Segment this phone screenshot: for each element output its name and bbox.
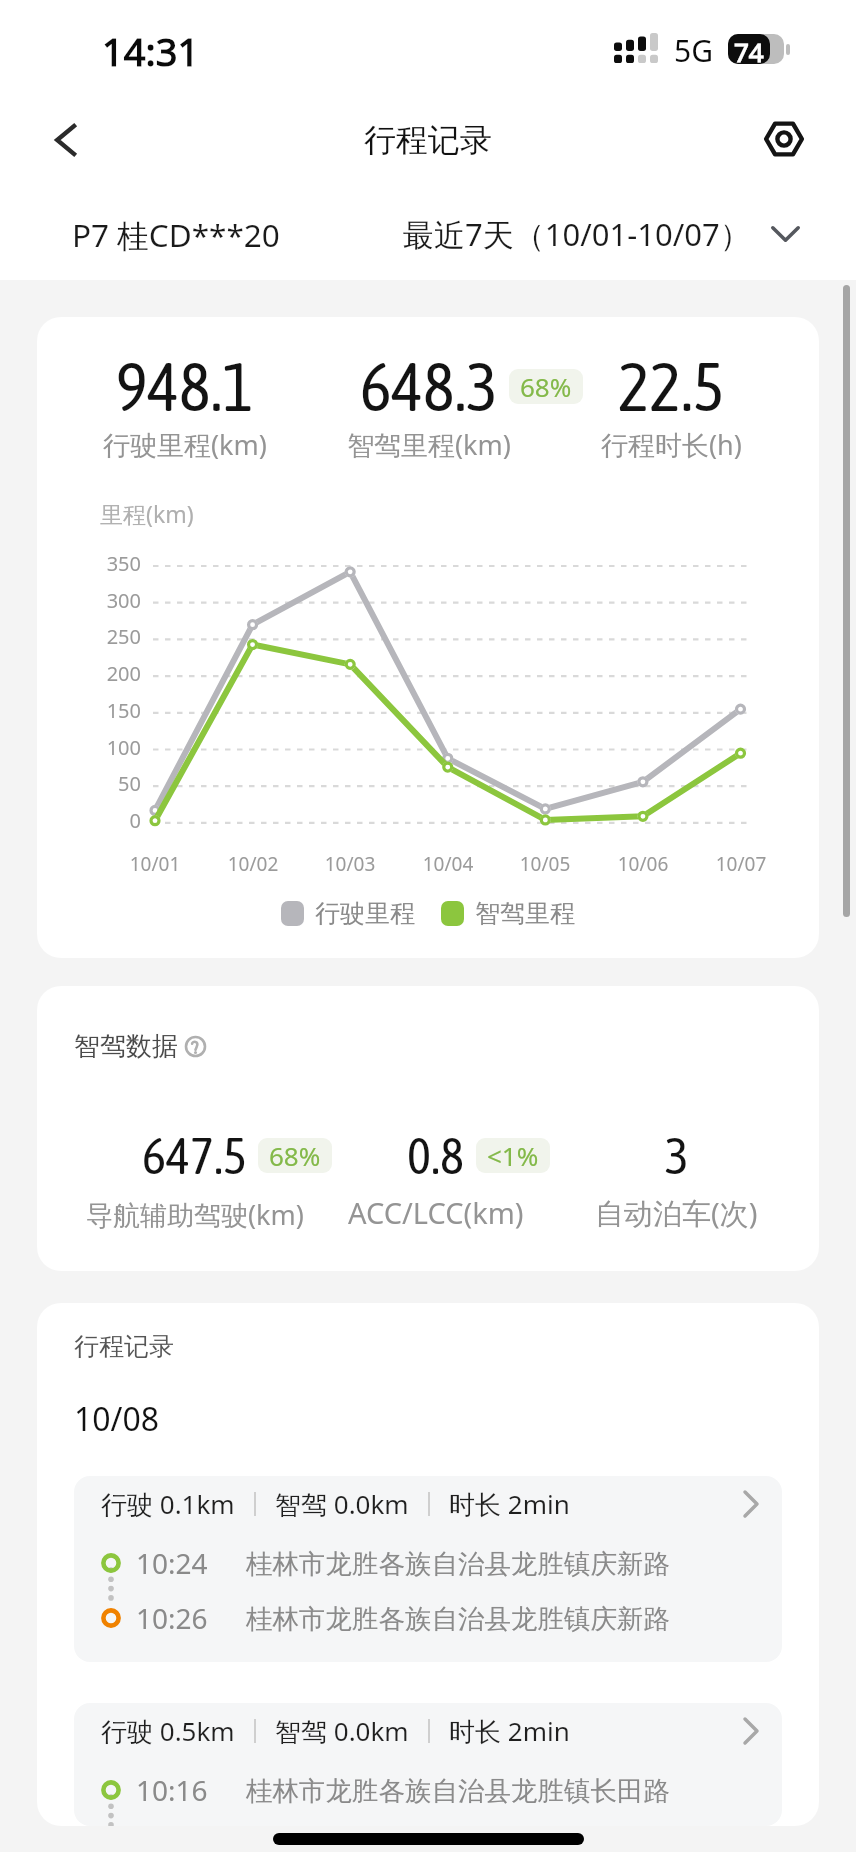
staticText: 3 xyxy=(665,1126,689,1184)
staticText: 948.1 xyxy=(116,348,254,425)
staticText: 0 xyxy=(71,807,141,834)
staticText: 桂林市龙胜各族自治县龙胜镇长田路 xyxy=(246,1774,670,1807)
staticText: 自动泊车(次) xyxy=(595,1193,758,1233)
staticText: 648.3 xyxy=(360,348,498,425)
staticText: 200 xyxy=(71,660,141,687)
staticText: P7 桂CD***20 xyxy=(72,213,280,256)
staticText: 行程记录 xyxy=(74,1331,174,1362)
staticText: 250 xyxy=(71,623,141,650)
staticText: 10/05 xyxy=(497,851,593,877)
button[interactable]: Back xyxy=(35,110,95,170)
staticText: 5G xyxy=(674,30,713,71)
staticText: 里程(km) xyxy=(100,498,194,529)
staticText: 最近7天（10/01-10/07） xyxy=(403,213,751,255)
staticText: 300 xyxy=(71,587,141,614)
staticText: 行驶里程 xyxy=(315,898,415,929)
staticText: 647.5 xyxy=(142,1126,247,1184)
staticText: 智驾 0.0km xyxy=(275,1713,409,1749)
staticText: 行驶 0.5km xyxy=(101,1713,235,1749)
staticText: 行驶里程(km) xyxy=(103,426,267,463)
staticText: 10/07 xyxy=(693,851,789,877)
staticText: 行驶 0.1km xyxy=(101,1486,235,1522)
staticText: 0.8 xyxy=(407,1126,465,1184)
staticText: 10/02 xyxy=(205,851,301,877)
staticText: 50 xyxy=(71,770,141,797)
staticText: 智驾里程(km) xyxy=(347,426,511,463)
staticText: 智驾数据 xyxy=(74,1030,178,1063)
staticText: 68% xyxy=(269,1138,321,1173)
staticText: ACC/LCC(km) xyxy=(348,1193,524,1232)
staticText: 智驾 0.0km xyxy=(275,1486,409,1522)
staticText: 10/06 xyxy=(595,851,691,877)
staticText: 74 xyxy=(734,34,764,64)
button[interactable]: 智驾数据 xyxy=(74,1030,207,1063)
button[interactable]: Settings xyxy=(754,109,814,169)
button[interactable]: 行驶 0.5km xyxy=(74,1703,782,1826)
staticText: 150 xyxy=(71,697,141,724)
staticText: 10/08 xyxy=(74,1397,160,1441)
staticText: 10/04 xyxy=(400,851,496,877)
staticText: 桂林市龙胜各族自治县龙胜镇庆新路 xyxy=(246,1602,670,1635)
staticText: 智驾里程 xyxy=(475,898,575,929)
staticText: 导航辅助驾驶(km) xyxy=(86,1196,304,1233)
staticText: <1% xyxy=(487,1138,539,1173)
staticText: 68% xyxy=(520,369,572,404)
staticText: 时长 2min xyxy=(449,1713,570,1749)
staticText: 10:26 xyxy=(136,1599,208,1637)
staticText: 10/01 xyxy=(107,851,203,877)
staticText: 10:16 xyxy=(136,1771,208,1809)
button[interactable]: 行驶 0.1km xyxy=(74,1476,782,1662)
staticText: 桂林市龙胜各族自治县龙胜镇庆新路 xyxy=(246,1547,670,1580)
staticText: 100 xyxy=(71,734,141,761)
staticText: 14:31 xyxy=(102,25,200,77)
staticText: 10/03 xyxy=(302,851,398,877)
staticText: 行程时长(h) xyxy=(601,426,742,463)
staticText: 22.5 xyxy=(618,348,725,425)
button[interactable]: 最近7天（10/01-10/07） xyxy=(403,213,800,255)
staticText: 时长 2min xyxy=(449,1486,570,1522)
staticText: 350 xyxy=(71,550,141,577)
staticText: 行程记录 xyxy=(364,120,492,160)
staticText: 10:24 xyxy=(136,1544,208,1582)
